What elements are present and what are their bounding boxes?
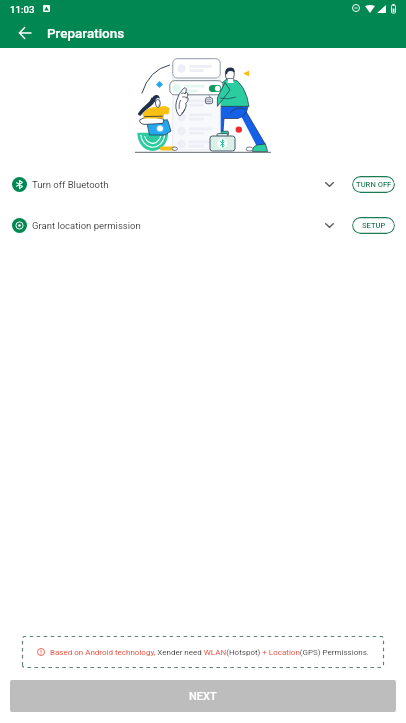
staticText: 11:03 — [10, 4, 35, 15]
button[interactable]: Grant location permission — [0, 217, 406, 234]
button[interactable]: Back — [11, 19, 38, 46]
button[interactable]: NEXT — [10, 680, 396, 712]
staticText: Preparations — [47, 25, 125, 41]
staticText: TURN OFF — [356, 180, 392, 189]
button[interactable]: Expand — [319, 176, 339, 193]
button[interactable]: SETUP — [352, 217, 395, 234]
staticText: Turn off Bluetooth — [32, 179, 109, 190]
staticText: NEXT — [189, 690, 217, 703]
staticText: Grant location permission — [32, 220, 141, 231]
staticText: Based on Android technology, Xender need… — [50, 648, 369, 657]
button[interactable]: TURN OFF — [352, 176, 395, 193]
staticText: SETUP — [362, 221, 386, 230]
button[interactable]: Turn off Bluetooth — [0, 176, 406, 193]
button[interactable]: Expand — [319, 217, 339, 234]
